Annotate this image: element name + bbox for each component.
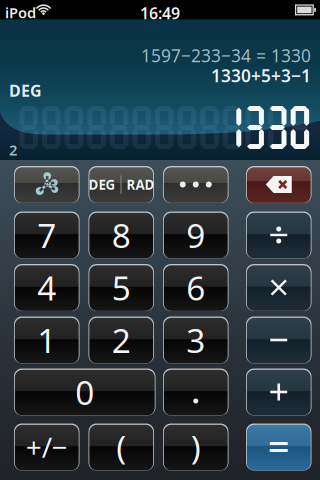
- button[interactable]: 2: [88, 316, 154, 363]
- staticText: 2: [112, 318, 131, 362]
- staticText: 9: [186, 213, 205, 257]
- button[interactable]: 8: [88, 211, 154, 258]
- button[interactable]: 3: [163, 316, 228, 363]
- button[interactable]: 6: [163, 264, 228, 311]
- button[interactable]: (: [88, 423, 154, 470]
- button[interactable]: Add: [246, 368, 311, 415]
- button[interactable]: ): [163, 423, 228, 470]
- button[interactable]: Equals: [246, 423, 311, 470]
- staticText: 1597−233−34 = 1330: [141, 44, 311, 67]
- staticText: ): [191, 425, 201, 469]
- staticText: DEG: [88, 176, 115, 193]
- staticText: 16:49: [140, 2, 180, 24]
- staticText: 0: [75, 370, 94, 414]
- staticText: RAD: [126, 176, 154, 193]
- staticText: 7: [37, 213, 56, 257]
- button[interactable]: Delete: [246, 166, 311, 203]
- staticText: 1: [37, 318, 56, 362]
- staticText: iPod: [5, 3, 36, 22]
- staticText: 6: [186, 265, 205, 310]
- button[interactable]: 9: [163, 211, 228, 258]
- button[interactable]: DEG: [88, 166, 154, 203]
- staticText: 8: [112, 213, 131, 257]
- staticText: 1330+5+3−1: [211, 64, 311, 87]
- button[interactable]: 7: [14, 211, 79, 258]
- staticText: +/−: [26, 428, 68, 466]
- button[interactable]: Multiply: [246, 264, 311, 311]
- staticText: 3: [186, 318, 205, 362]
- staticText: 5: [112, 265, 131, 310]
- button[interactable]: More: [163, 166, 228, 203]
- button[interactable]: Divide: [246, 211, 311, 258]
- button[interactable]: Scientific: [14, 166, 79, 203]
- staticText: DEG: [9, 80, 42, 101]
- staticText: 2: [9, 140, 17, 159]
- button[interactable]: Subtract: [246, 316, 311, 363]
- staticText: 4: [37, 265, 56, 310]
- staticText: (: [116, 425, 126, 469]
- button[interactable]: 4: [14, 264, 79, 311]
- button[interactable]: +/−: [14, 423, 79, 470]
- button[interactable]: 0: [14, 368, 155, 415]
- button[interactable]: 5: [88, 264, 154, 311]
- button[interactable]: 1: [14, 316, 79, 363]
- button[interactable]: Decimal point: [163, 368, 228, 415]
